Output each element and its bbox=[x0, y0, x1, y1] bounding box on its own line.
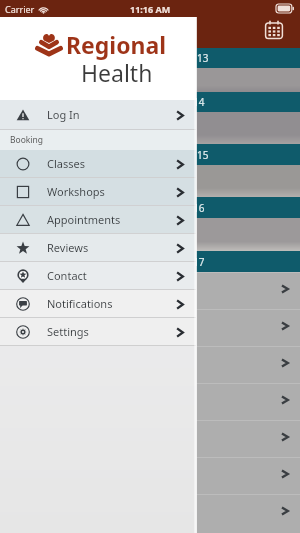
staticText: Health bbox=[81, 57, 153, 88]
staticText: Appointments bbox=[47, 212, 121, 227]
staticText: 13 bbox=[197, 51, 209, 65]
staticText: Reviews bbox=[47, 240, 89, 255]
button[interactable]: Notifications bbox=[0, 290, 196, 317]
staticText: 14 bbox=[193, 95, 205, 109]
button[interactable]: Classes bbox=[0, 150, 196, 177]
staticText: Log In bbox=[47, 107, 80, 122]
button[interactable]: Calendar bbox=[264, 20, 284, 40]
button[interactable]: Appointments bbox=[0, 206, 196, 233]
button[interactable]: Reviews bbox=[0, 234, 196, 261]
staticText: Regional bbox=[66, 29, 167, 60]
staticText: 17 bbox=[193, 255, 205, 269]
button[interactable]: Contact bbox=[0, 262, 196, 289]
staticText: Notifications bbox=[47, 296, 113, 311]
staticText: Contact bbox=[47, 268, 87, 283]
staticText: Workshops bbox=[47, 184, 105, 199]
staticText: Booking bbox=[10, 134, 44, 146]
button[interactable]: Workshops bbox=[0, 178, 196, 205]
staticText: 15 bbox=[197, 148, 209, 162]
staticText: 16 bbox=[193, 201, 205, 215]
staticText: Settings bbox=[47, 324, 89, 339]
button[interactable]: Settings bbox=[0, 318, 196, 345]
staticText: Classes bbox=[47, 156, 85, 171]
staticText: 11:16 AM bbox=[130, 3, 171, 15]
button[interactable]: Log In bbox=[0, 100, 196, 129]
staticText: Carrier bbox=[5, 3, 35, 15]
